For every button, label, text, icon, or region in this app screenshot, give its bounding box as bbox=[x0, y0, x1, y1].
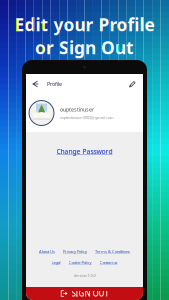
button[interactable]: Cookie Policy bbox=[68, 260, 91, 265]
staticText: Legal bbox=[51, 260, 60, 265]
button[interactable]: Legal bbox=[51, 260, 60, 265]
staticText: Change Password bbox=[56, 147, 112, 156]
staticText: SIGN OUT bbox=[71, 288, 108, 299]
button[interactable]: Contact us bbox=[99, 260, 117, 265]
button[interactable]: Privacy Policy bbox=[63, 249, 87, 254]
staticText: Terms & Conditions bbox=[95, 249, 130, 254]
button[interactable]: Edit profile bbox=[126, 77, 139, 90]
staticText: Cookie Policy bbox=[68, 260, 91, 265]
staticText: Privacy Policy bbox=[63, 249, 87, 254]
staticText: ouptestinuser0003@gmail.com bbox=[60, 115, 114, 120]
button[interactable]: Change Password bbox=[56, 147, 112, 156]
staticText: ouptestinuser bbox=[60, 106, 94, 113]
button[interactable]: Terms & Conditions bbox=[95, 249, 130, 254]
button[interactable]: SIGN OUT bbox=[26, 287, 143, 300]
button[interactable]: Back bbox=[29, 77, 42, 90]
staticText: Edit your Profile bbox=[14, 13, 154, 36]
staticText: Version 1.0.0 bbox=[73, 273, 95, 278]
staticText: Profile bbox=[47, 80, 62, 88]
staticText: Contact us bbox=[99, 260, 117, 265]
staticText: or Sign Out bbox=[35, 36, 134, 59]
staticText: About Us bbox=[39, 249, 55, 254]
button[interactable]: About Us bbox=[39, 249, 55, 254]
